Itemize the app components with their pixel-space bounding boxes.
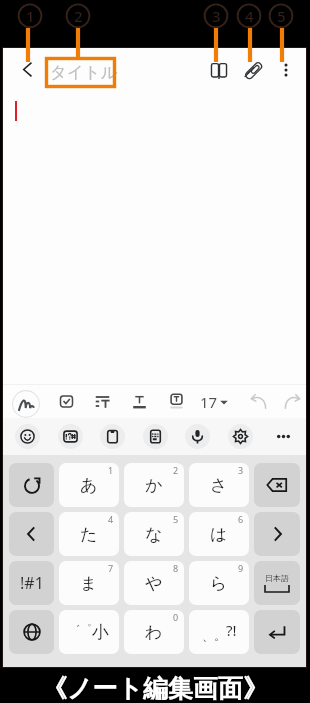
button[interactable]: ゛゜ bbox=[59, 610, 119, 654]
button[interactable]: Underline bbox=[128, 390, 151, 413]
staticText: た bbox=[80, 524, 98, 545]
button[interactable]: Undo bbox=[246, 389, 270, 413]
staticText: 8 bbox=[173, 562, 179, 574]
staticText: か bbox=[145, 475, 163, 496]
staticText: 日本語 bbox=[265, 573, 289, 583]
staticText: 4 bbox=[108, 513, 114, 525]
button[interactable]: 、。 bbox=[189, 610, 249, 654]
button[interactable]: Redo bbox=[280, 389, 304, 413]
staticText: 0 bbox=[173, 611, 179, 623]
button[interactable]: Emoji bbox=[15, 424, 40, 449]
staticText: 5 bbox=[277, 6, 286, 24]
button[interactable]: 17 bbox=[200, 392, 228, 412]
button[interactable] bbox=[9, 610, 54, 654]
staticText: ら bbox=[210, 573, 228, 594]
button[interactable]: Back bbox=[16, 57, 40, 81]
staticText: 5 bbox=[173, 513, 179, 525]
button[interactable]: ら bbox=[189, 561, 249, 605]
button[interactable]: わ bbox=[124, 610, 184, 654]
button[interactable] bbox=[9, 463, 54, 507]
button[interactable] bbox=[9, 512, 54, 556]
staticText: わ bbox=[145, 622, 163, 643]
button[interactable]: Voice input bbox=[185, 424, 210, 449]
button[interactable]: な bbox=[124, 512, 184, 556]
button[interactable]: Handwriting bbox=[12, 390, 40, 418]
staticText: さ bbox=[210, 475, 228, 496]
button[interactable]: 日本語 bbox=[254, 561, 300, 605]
button[interactable]: ま bbox=[59, 561, 119, 605]
staticText: ?! bbox=[226, 620, 237, 640]
staticText: ゛゜ bbox=[69, 622, 92, 636]
staticText: 小 bbox=[92, 622, 109, 643]
button[interactable]: More options bbox=[273, 57, 299, 83]
staticText: は bbox=[210, 524, 228, 545]
button[interactable] bbox=[254, 463, 300, 507]
button[interactable]: あ bbox=[59, 463, 119, 507]
button[interactable]: た bbox=[59, 512, 119, 556]
staticText: 9 bbox=[238, 562, 244, 574]
button[interactable]: Paragraph format bbox=[91, 390, 114, 413]
staticText: あ bbox=[80, 475, 98, 496]
button[interactable]: Symbols bbox=[58, 424, 83, 449]
button[interactable]: か bbox=[124, 463, 184, 507]
button[interactable]: Dictionary bbox=[206, 57, 232, 83]
button[interactable]: Clipboard bbox=[100, 424, 125, 449]
staticText: や bbox=[145, 573, 163, 594]
button[interactable]: More bbox=[271, 424, 296, 449]
button[interactable]: Text style bbox=[165, 390, 188, 413]
staticText: 17 bbox=[200, 392, 218, 412]
staticText: 1 bbox=[26, 6, 35, 24]
staticText: 7 bbox=[108, 562, 114, 574]
button[interactable]: は bbox=[189, 512, 249, 556]
button[interactable]: や bbox=[124, 561, 184, 605]
button[interactable]: Text templates bbox=[143, 424, 168, 449]
staticText: !#1 bbox=[20, 572, 44, 594]
staticText: 3 bbox=[212, 6, 221, 24]
staticText: 2 bbox=[74, 6, 83, 24]
staticText: 3 bbox=[238, 464, 244, 476]
button[interactable] bbox=[254, 512, 300, 556]
staticText: 1 bbox=[108, 464, 114, 476]
button[interactable]: Checklist bbox=[55, 390, 78, 413]
button[interactable]: タイトル bbox=[48, 57, 119, 88]
staticText: タイトル bbox=[50, 62, 118, 83]
staticText: 、。 bbox=[202, 628, 226, 643]
button[interactable] bbox=[254, 610, 300, 654]
button[interactable]: !#1 bbox=[9, 561, 54, 605]
staticText: 2 bbox=[173, 464, 179, 476]
staticText: な bbox=[145, 524, 163, 545]
button[interactable]: さ bbox=[189, 463, 249, 507]
staticText: 4 bbox=[245, 6, 254, 24]
staticText: 《ノート編集画面》 bbox=[0, 673, 310, 703]
staticText: 6 bbox=[238, 513, 244, 525]
button[interactable]: Settings bbox=[228, 424, 253, 449]
staticText: ま bbox=[80, 573, 98, 594]
button[interactable]: Attach bbox=[240, 57, 266, 83]
